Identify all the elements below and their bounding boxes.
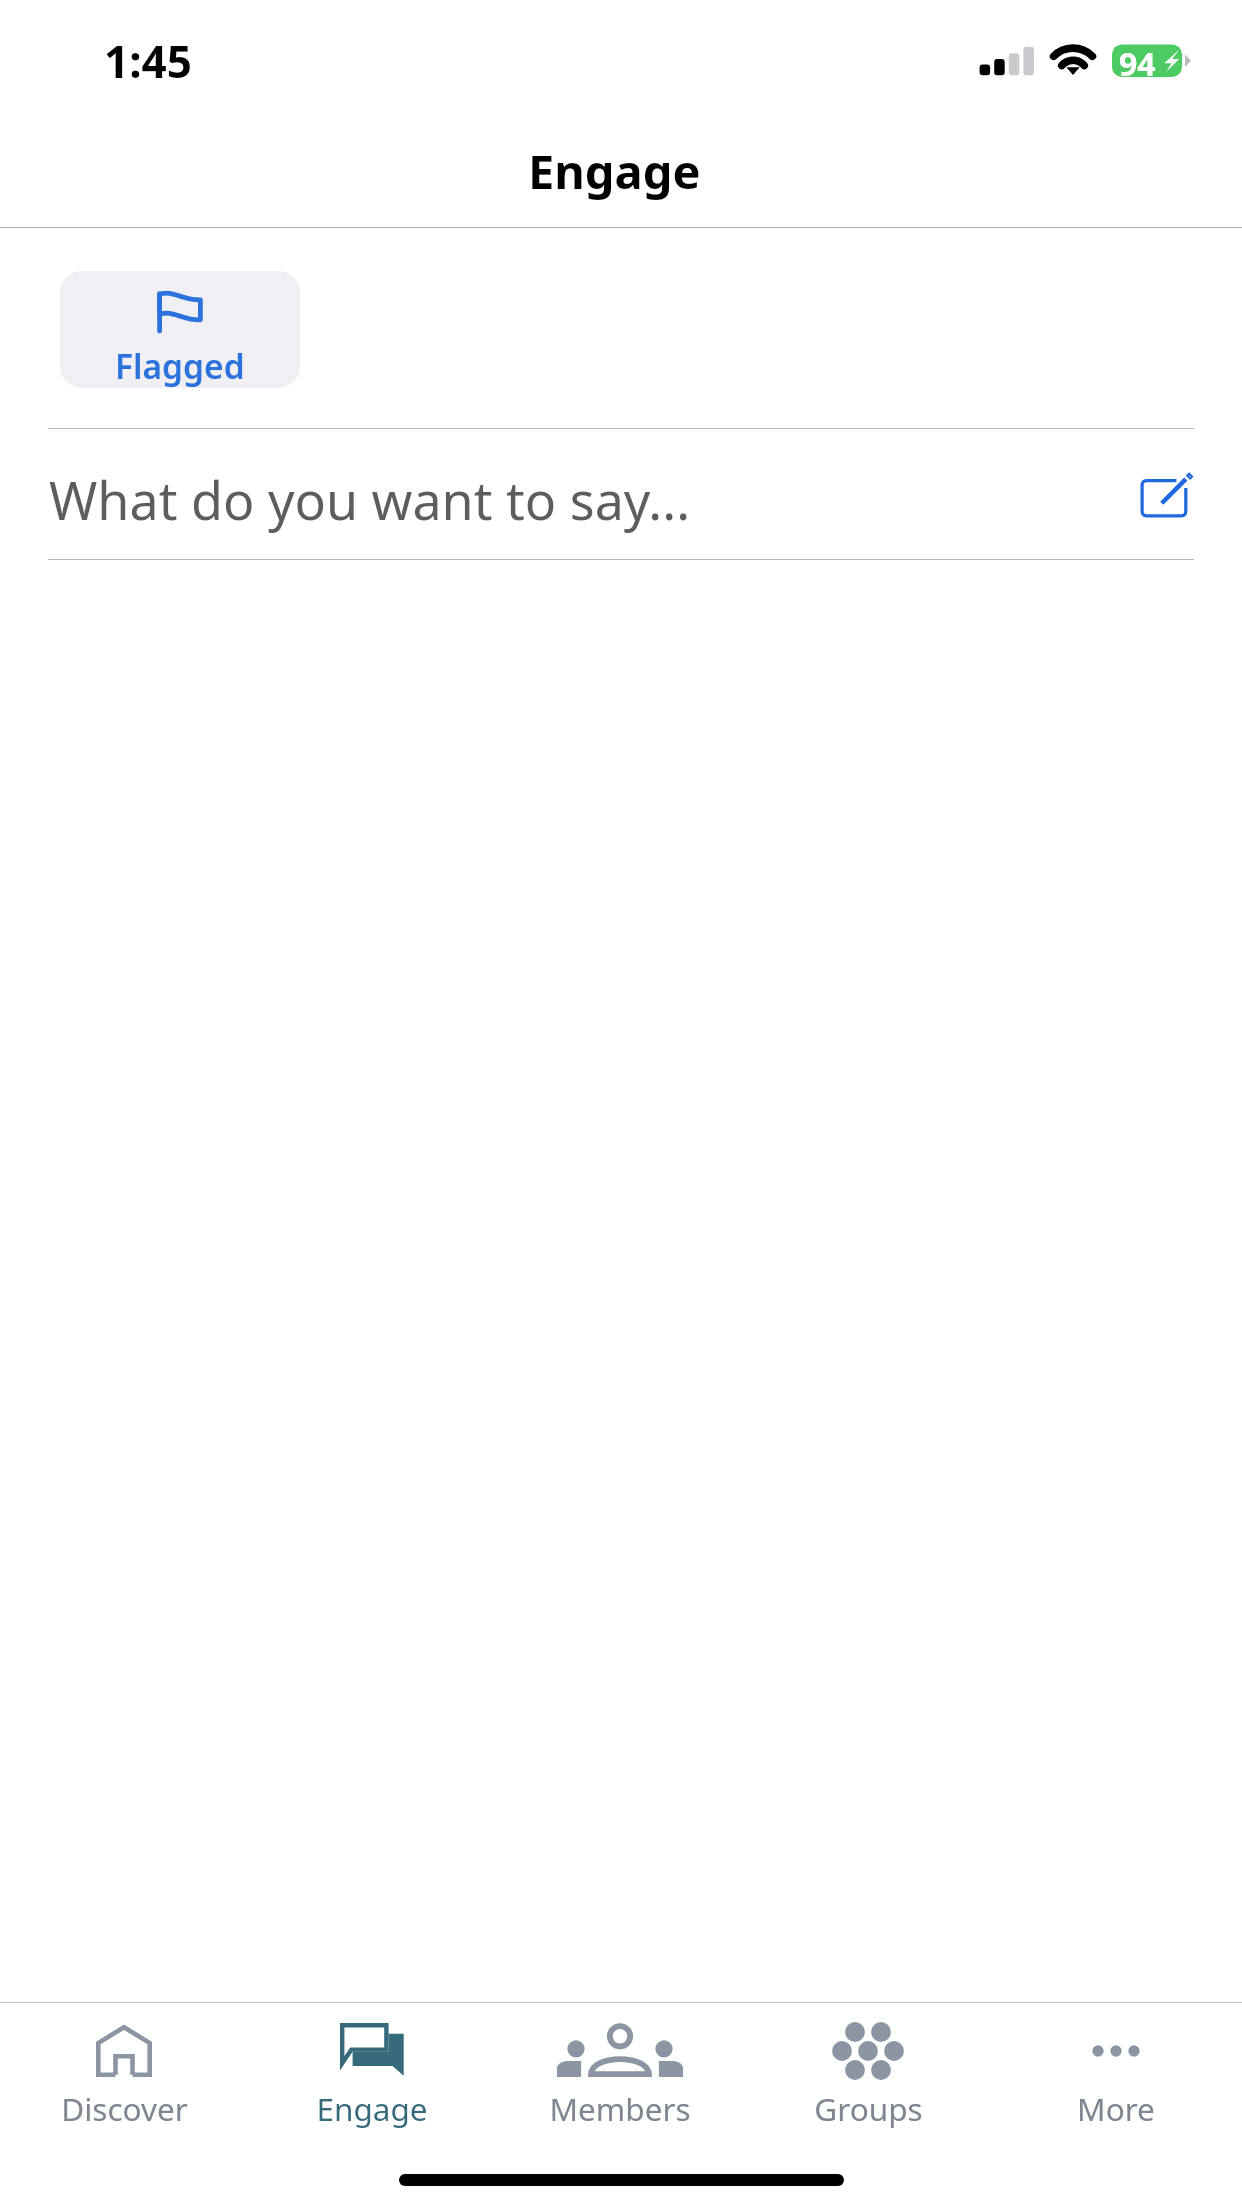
staticText: Groups [814, 2087, 923, 2130]
button[interactable]: Discover [0, 2003, 248, 2148]
button[interactable]: Members [496, 2003, 744, 2148]
staticText: 1:45 [104, 31, 192, 91]
staticText: More [1077, 2087, 1155, 2130]
button[interactable]: Groups [744, 2003, 992, 2148]
button[interactable]: More [992, 2003, 1240, 2148]
staticText: Flagged [115, 343, 245, 388]
staticText: Discover [61, 2087, 188, 2130]
staticText: 94 [1119, 42, 1156, 86]
button[interactable]: Engage [248, 2003, 496, 2148]
staticText: Engage [528, 139, 701, 203]
button[interactable]: Flagged [60, 271, 300, 388]
button[interactable]: Compose a message [1120, 454, 1208, 542]
staticText: What do you want to say... [49, 464, 691, 535]
staticText: Engage [316, 2087, 428, 2130]
staticText: Members [549, 2087, 691, 2130]
button[interactable]: What do you want to say... [48, 430, 1194, 559]
